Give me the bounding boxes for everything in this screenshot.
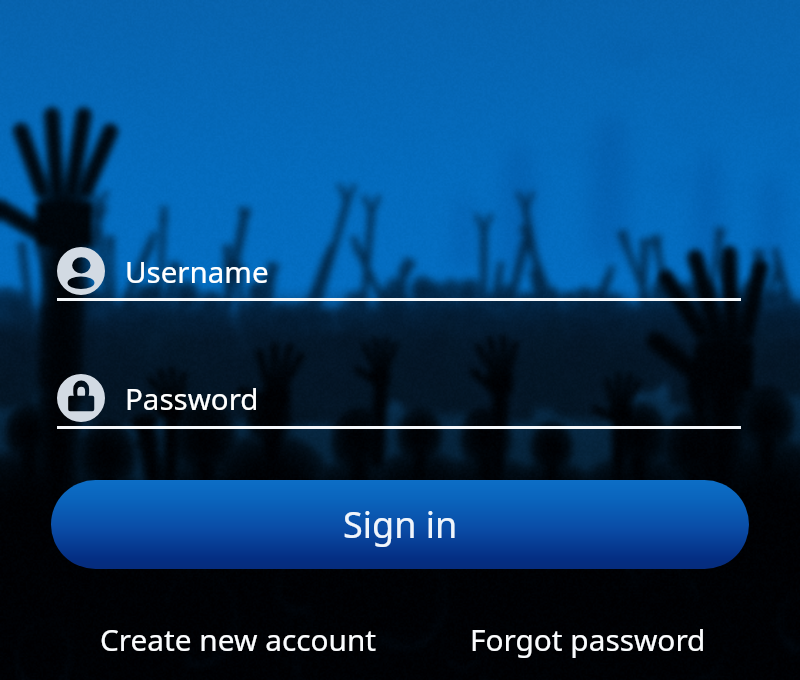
staticText: Sign in	[343, 500, 458, 549]
button[interactable]: Create new account	[100, 619, 377, 660]
button[interactable]: Sign in	[51, 480, 749, 569]
staticText: Username	[125, 251, 269, 291]
other: Username	[57, 247, 105, 295]
staticText: Create new account	[100, 619, 377, 660]
other: Password	[57, 374, 105, 422]
button[interactable]: Forgot password	[470, 619, 706, 660]
staticText: Password	[125, 378, 259, 418]
staticText: Forgot password	[470, 619, 706, 660]
button[interactable]: Username	[57, 247, 741, 301]
button[interactable]: Password	[57, 374, 741, 429]
